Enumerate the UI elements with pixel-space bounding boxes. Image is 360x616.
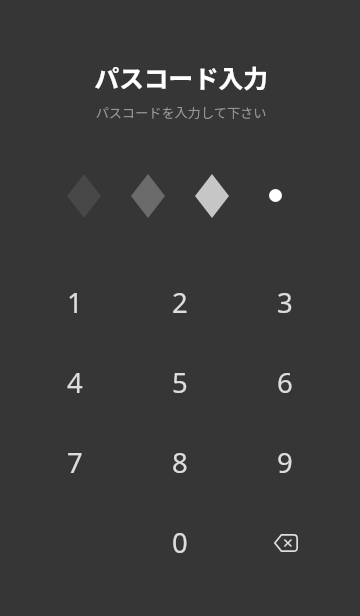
button[interactable]: 2 [144,266,216,338]
staticText: 2 [172,284,188,321]
button[interactable]: 4 [39,346,111,418]
button[interactable]: 8 [144,426,216,498]
button[interactable]: 6 [249,346,321,418]
button[interactable]: 3 [249,266,321,338]
staticText: 0 [172,524,188,561]
button[interactable]: 5 [144,346,216,418]
staticText: 7 [67,444,83,481]
button[interactable]: 0 [144,506,216,578]
staticText: 6 [277,364,293,401]
staticText: 5 [172,364,188,401]
staticText: 8 [172,444,188,481]
button[interactable]: 7 [39,426,111,498]
button[interactable]: 9 [249,426,321,498]
staticText: パスコード入力 [1,59,360,95]
staticText: 9 [277,444,293,481]
staticText: 4 [67,364,83,401]
staticText: パスコードを入力して下さい [1,103,360,122]
staticText: 3 [277,284,293,321]
staticText: 1 [67,284,83,321]
button[interactable]: 1 [39,266,111,338]
button[interactable]: Backspace [250,507,322,579]
